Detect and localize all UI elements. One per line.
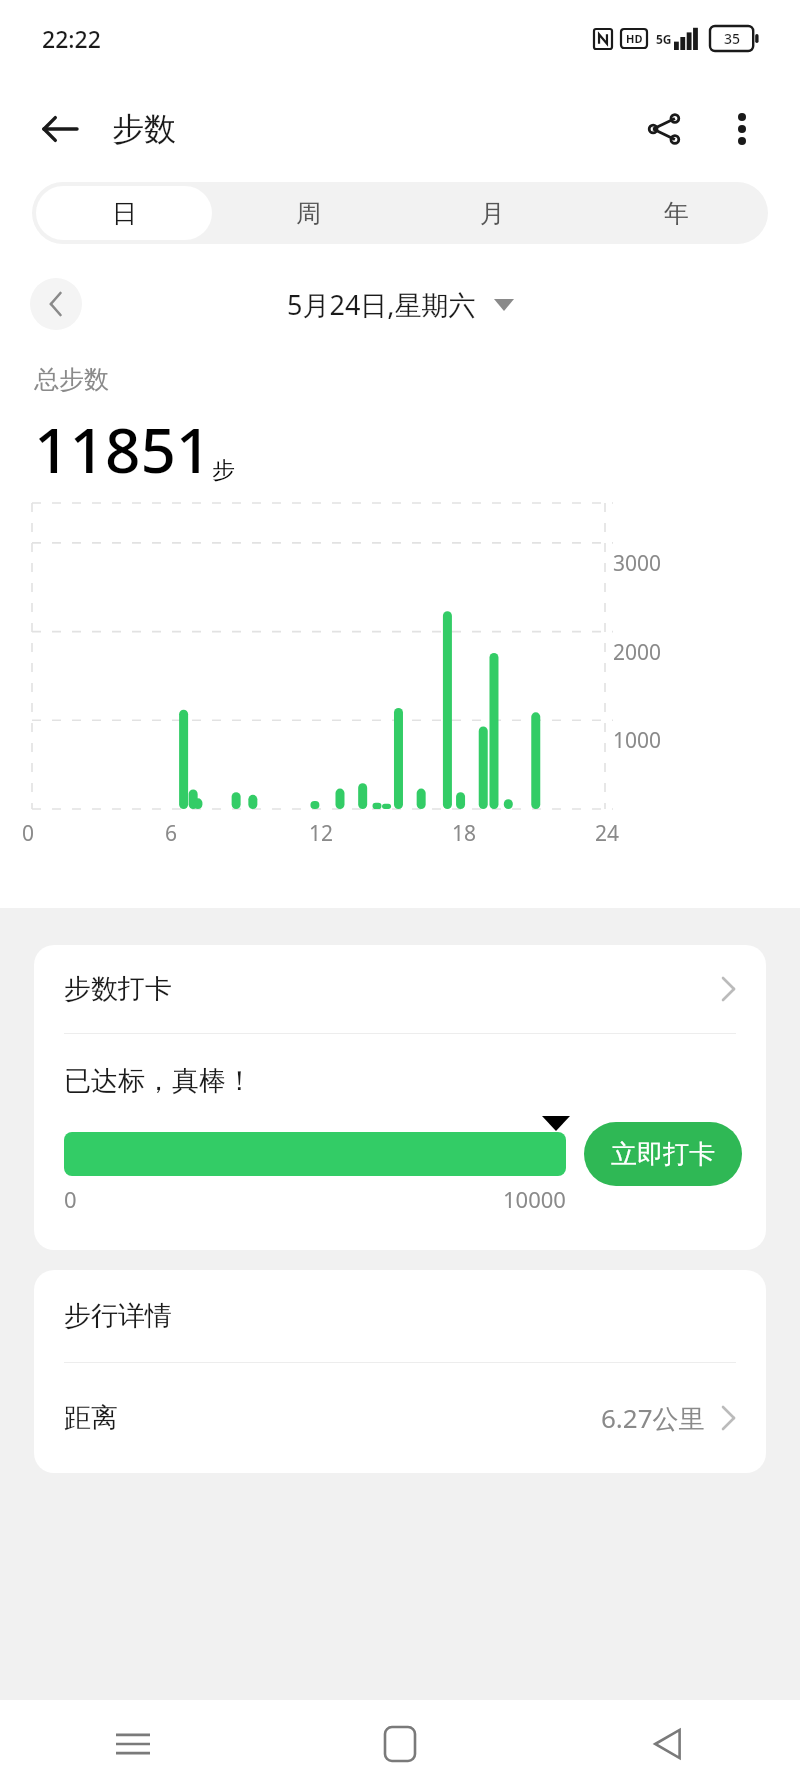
staticText: 已达标，真棒！ bbox=[64, 1064, 253, 1098]
staticText: 0 bbox=[22, 819, 35, 848]
staticText: 步 bbox=[212, 456, 235, 485]
staticText: 5月24日,星期六 bbox=[287, 286, 476, 323]
staticText: 步数打卡 bbox=[64, 972, 172, 1006]
button[interactable]: 年 bbox=[588, 186, 764, 240]
staticText: 年 bbox=[664, 198, 689, 229]
staticText: 总步数 bbox=[34, 364, 109, 395]
button[interactable]: Recents bbox=[0, 1700, 266, 1787]
button[interactable]: 距离 bbox=[34, 1363, 766, 1473]
button[interactable]: Share bbox=[632, 97, 696, 161]
staticText: 周 bbox=[296, 198, 321, 229]
staticText: 2000 bbox=[613, 638, 662, 667]
button[interactable]: 步数打卡 bbox=[34, 945, 766, 1033]
staticText: 步数 bbox=[112, 109, 176, 149]
button[interactable]: Back bbox=[30, 99, 90, 159]
staticText: 6 bbox=[165, 819, 178, 848]
button[interactable]: Home bbox=[266, 1700, 533, 1787]
staticText: 35 bbox=[724, 29, 741, 48]
button[interactable]: 月 bbox=[404, 186, 580, 240]
staticText: HD bbox=[626, 31, 643, 46]
staticText: 5G bbox=[656, 31, 672, 47]
staticText: 22:22 bbox=[42, 23, 101, 54]
staticText: 11851 bbox=[34, 407, 212, 491]
staticText: 6.27公里 bbox=[601, 1400, 705, 1436]
button[interactable]: 立即打卡 bbox=[584, 1122, 742, 1186]
button[interactable]: More options bbox=[710, 97, 774, 161]
staticText: 月 bbox=[480, 198, 505, 229]
button[interactable]: 日 bbox=[36, 186, 212, 240]
staticText: 步行详情 bbox=[64, 1299, 172, 1333]
staticText: 18 bbox=[452, 819, 477, 848]
button[interactable]: Back bbox=[533, 1700, 800, 1787]
staticText: 1000 bbox=[613, 726, 662, 755]
staticText: 12 bbox=[309, 819, 334, 848]
staticText: 0 bbox=[64, 1184, 77, 1214]
staticText: 距离 bbox=[64, 1401, 118, 1435]
staticText: 10000 bbox=[503, 1184, 566, 1214]
button[interactable]: 周 bbox=[220, 186, 396, 240]
staticText: 24 bbox=[595, 819, 620, 848]
button[interactable]: Previous day bbox=[30, 278, 82, 330]
button[interactable]: 5月24日,星期六 bbox=[287, 286, 514, 323]
staticText: 日 bbox=[112, 198, 137, 229]
staticText: 3000 bbox=[613, 549, 662, 578]
staticText: 立即打卡 bbox=[611, 1138, 715, 1171]
